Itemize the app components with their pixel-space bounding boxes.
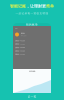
staticText: 9:41 bbox=[15, 27, 18, 29]
staticText: 我的账单 bbox=[26, 23, 38, 26]
staticText: ，让理财更 bbox=[26, 4, 46, 8]
staticText: 一起记录每一笔收支明细 bbox=[15, 12, 48, 15]
staticText: 交通出行 −¥32.00 bbox=[15, 43, 25, 45]
staticText: 简单 bbox=[46, 4, 54, 8]
staticText: 交通出行 −¥32.00 bbox=[15, 50, 25, 52]
staticText: 今天 12:30 bbox=[21, 35, 27, 36]
staticText: 餐饮美食 bbox=[21, 32, 25, 34]
staticText: 交通出行 −¥32.00 bbox=[15, 47, 25, 48]
staticText: 交通出行 −¥32.00 bbox=[15, 40, 25, 42]
staticText: 智能记账 bbox=[10, 4, 26, 8]
staticText: 交通出行 −¥32.00 bbox=[15, 53, 25, 55]
staticText: 记一笔 bbox=[27, 95, 36, 98]
staticText: 本月支出趋势 bbox=[29, 71, 35, 72]
